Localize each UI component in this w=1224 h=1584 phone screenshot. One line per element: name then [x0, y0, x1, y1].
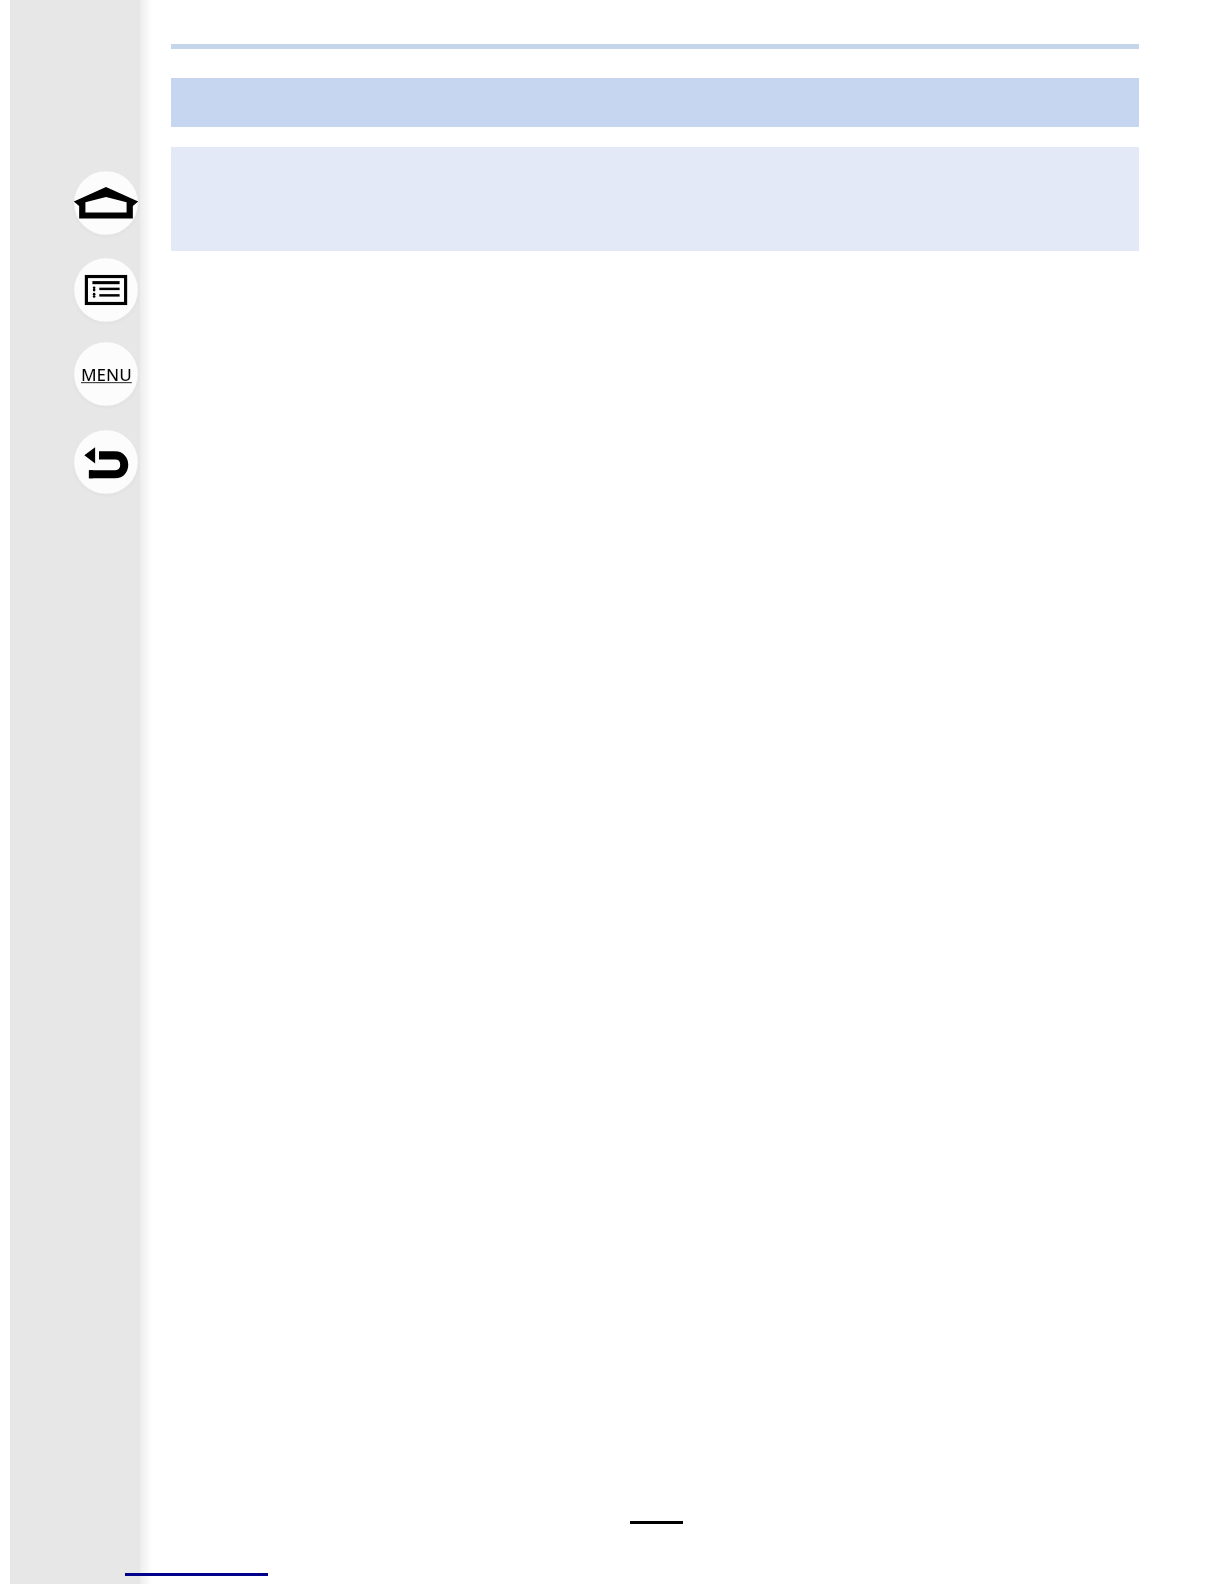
staticText: MENU: [81, 363, 132, 386]
button[interactable]: Back: [71, 427, 141, 497]
button[interactable]: Contents: [71, 255, 141, 325]
button[interactable]: MENU: [71, 339, 141, 409]
button[interactable]: Home: [71, 168, 141, 238]
